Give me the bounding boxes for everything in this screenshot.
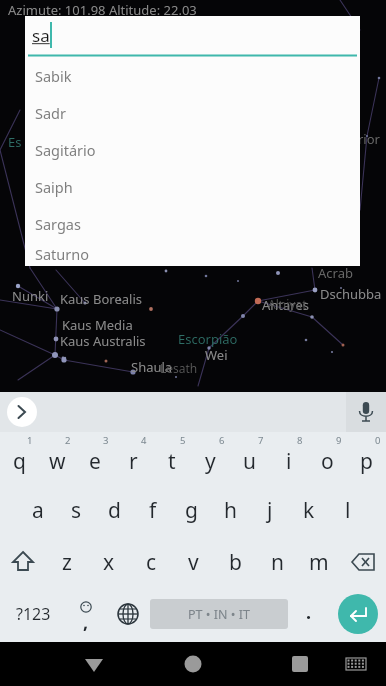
button[interactable]: Sadr [25, 94, 360, 131]
staticText: z [62, 548, 72, 577]
staticText: Saiph [35, 177, 73, 197]
staticText: rior [358, 130, 380, 148]
staticText: 7 [258, 434, 264, 447]
button[interactable]: i [269, 432, 308, 484]
staticText: Azimute: 101.98 Altitude: 22.03 [8, 1, 197, 19]
staticText: c [146, 548, 157, 577]
staticText: Nunki [12, 287, 49, 305]
button[interactable]: r [114, 432, 152, 484]
button[interactable]: p [347, 432, 386, 484]
staticText: Saturno [35, 244, 90, 264]
staticText: k [303, 496, 315, 525]
button[interactable]: g [172, 484, 211, 536]
button[interactable]: j [250, 484, 289, 536]
button[interactable]: Backspace [340, 536, 386, 588]
button[interactable]: h [211, 484, 250, 536]
staticText: ?123 [16, 603, 51, 625]
button[interactable]: z [46, 536, 88, 588]
staticText: v [188, 548, 199, 577]
staticText: Es [8, 133, 22, 151]
button[interactable]: Sabik [25, 57, 360, 94]
button[interactable]: f [133, 484, 172, 536]
button[interactable]: Saiph [25, 168, 360, 205]
staticText: h [224, 496, 237, 525]
button[interactable]: m [298, 536, 340, 588]
button[interactable]: Sagitário [25, 131, 360, 168]
button[interactable]: e [76, 432, 114, 484]
staticText: g [185, 496, 198, 525]
button[interactable]: PT • IN • IT [150, 599, 288, 629]
staticText: s [71, 496, 82, 525]
button[interactable]: Hide keyboard [70, 642, 118, 686]
staticText: Lesath [160, 360, 198, 376]
button[interactable]: t [152, 432, 191, 484]
button[interactable]: s [57, 484, 95, 536]
button[interactable]: . [288, 588, 330, 640]
staticText: n [271, 548, 284, 577]
staticText: Sagitário [35, 140, 96, 160]
button[interactable]: k [289, 484, 328, 536]
button[interactable]: Change language [106, 588, 150, 640]
staticText: p [360, 447, 373, 476]
staticText: Escorpião [178, 330, 238, 348]
staticText: q [13, 447, 26, 476]
button[interactable]: n [256, 536, 298, 588]
button[interactable]: a [19, 484, 57, 536]
staticText: , [83, 610, 89, 635]
staticText: Kaus Media [62, 316, 133, 334]
staticText: a [32, 496, 44, 525]
staticText: Shaula [131, 358, 173, 376]
button[interactable]: Expand suggestions [7, 397, 37, 427]
staticText: Sabik [35, 66, 72, 86]
staticText: 1 [27, 434, 33, 447]
button[interactable]: c [130, 536, 172, 588]
staticText: PT • IN • IT [188, 606, 250, 623]
button[interactable]: ?123 [0, 588, 66, 640]
staticText: b [229, 548, 242, 577]
button[interactable]: sa [25, 16, 360, 54]
button[interactable]: v [172, 536, 214, 588]
button[interactable]: u [230, 432, 269, 484]
staticText: sa [32, 24, 50, 47]
staticText: i [286, 447, 292, 476]
button[interactable]: Sargas [25, 205, 360, 242]
button[interactable]: l [328, 484, 367, 536]
staticText: r [129, 447, 138, 476]
button[interactable]: x [88, 536, 130, 588]
staticText: Sargas [35, 214, 81, 234]
button[interactable]: Home [169, 642, 217, 686]
button[interactable]: o [308, 432, 347, 484]
staticText: j [267, 496, 273, 525]
staticText: o [321, 447, 334, 476]
staticText: Wei [205, 346, 228, 364]
staticText: f [149, 496, 157, 525]
button[interactable]: Shift [0, 536, 46, 588]
button[interactable]: b [214, 536, 256, 588]
staticText: 8 [297, 434, 303, 447]
staticText: Kaus Australis [60, 332, 146, 350]
button[interactable]: Enter [330, 588, 386, 640]
button[interactable]: Emoji and comma [66, 588, 106, 640]
staticText: 4 [141, 434, 147, 447]
staticText: Acrab [318, 264, 353, 282]
staticText: u [243, 447, 256, 476]
staticText: e [89, 447, 101, 476]
button[interactable]: d [95, 484, 133, 536]
staticText: d [108, 496, 121, 525]
button[interactable]: w [38, 432, 76, 484]
staticText: t [168, 447, 176, 476]
button[interactable]: Recent apps [276, 642, 324, 686]
staticText: m [309, 548, 329, 577]
staticText: w [49, 447, 66, 476]
staticText: l [345, 496, 351, 525]
button[interactable]: Saturno [25, 242, 360, 266]
button[interactable]: Switch keyboard [334, 642, 378, 686]
button[interactable]: Voice input [346, 392, 386, 432]
staticText: Kaus Borealis [60, 290, 142, 308]
staticText: 2 [65, 434, 71, 447]
staticText: 6 [219, 434, 225, 447]
button[interactable]: q [0, 432, 38, 484]
staticText: Alniyat [268, 296, 307, 312]
button[interactable]: y [191, 432, 230, 484]
staticText: Dschubba [320, 285, 382, 303]
